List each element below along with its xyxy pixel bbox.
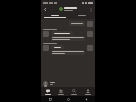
button[interactable] (51, 31, 73, 35)
button[interactable] (51, 36, 85, 41)
button[interactable] (69, 21, 85, 26)
button[interactable]: Search (67, 87, 81, 96)
button[interactable] (51, 50, 85, 55)
button[interactable]: Back (42, 6, 49, 13)
button[interactable] (68, 13, 95, 19)
button[interactable]: Profile (81, 87, 95, 96)
button[interactable]: Back (77, 96, 95, 102)
button[interactable] (41, 79, 95, 87)
button[interactable]: Messages (41, 87, 54, 96)
button[interactable]: Home (59, 96, 77, 102)
button[interactable]: Groups (54, 87, 67, 96)
button[interactable] (41, 13, 68, 19)
button[interactable] (51, 45, 64, 49)
button[interactable]: More options (87, 6, 94, 13)
button[interactable]: Recent apps (41, 96, 59, 102)
